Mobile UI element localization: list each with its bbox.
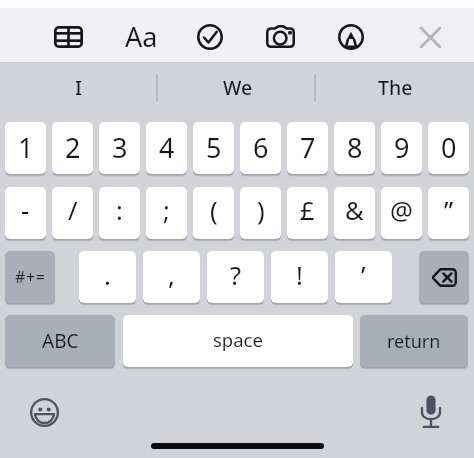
staticText: (	[210, 193, 218, 228]
staticText: ’	[361, 258, 366, 293]
staticText: ?	[230, 258, 242, 293]
staticText: ABC	[42, 328, 79, 354]
button[interactable]: 2	[52, 122, 93, 177]
staticText: @	[390, 193, 413, 228]
button[interactable]: Table	[45, 16, 91, 58]
button[interactable]: 1	[5, 122, 46, 177]
button[interactable]: :	[99, 187, 140, 242]
staticText: Aa	[125, 18, 158, 55]
button[interactable]: Camera	[257, 15, 303, 57]
staticText: -	[21, 193, 30, 228]
button[interactable]: space	[123, 315, 353, 370]
staticText: .	[104, 258, 111, 293]
staticText: £	[300, 193, 315, 228]
button[interactable]: Dictation	[411, 392, 451, 432]
button[interactable]: ABC	[5, 315, 115, 370]
button[interactable]: return	[360, 315, 468, 370]
staticText: 1	[18, 129, 34, 166]
button[interactable]: 5	[193, 122, 234, 177]
button[interactable]: )	[240, 187, 281, 242]
staticText: &	[345, 193, 364, 228]
button[interactable]: 6	[240, 122, 281, 177]
staticText: 9	[394, 129, 410, 166]
button[interactable]: ,	[143, 251, 200, 306]
button[interactable]: 4	[146, 122, 187, 177]
staticText: !	[296, 258, 303, 293]
staticText: 6	[253, 129, 269, 166]
button[interactable]: ?	[207, 251, 264, 306]
staticText: The	[378, 74, 413, 101]
staticText: return	[387, 329, 441, 354]
staticText: :	[116, 193, 123, 228]
staticText: )	[257, 193, 265, 228]
staticText: 4	[159, 129, 175, 166]
staticText: #+=	[15, 266, 46, 288]
button[interactable]: 8	[334, 122, 375, 177]
button[interactable]: Close	[407, 16, 453, 58]
staticText: ,	[168, 258, 175, 293]
button[interactable]: ;	[146, 187, 187, 242]
button[interactable]: (	[193, 187, 234, 242]
button[interactable]: #+=	[5, 251, 55, 306]
staticText: 2	[65, 129, 81, 166]
button[interactable]: ”	[428, 187, 469, 242]
button[interactable]: £	[287, 187, 328, 242]
staticText: We	[223, 74, 253, 101]
button[interactable]: I	[0, 62, 157, 112]
button[interactable]: /	[52, 187, 93, 242]
staticText: /	[68, 193, 78, 228]
staticText: 3	[112, 129, 128, 166]
button[interactable]: .	[79, 251, 136, 306]
staticText: space	[213, 327, 263, 352]
button[interactable]: We	[159, 62, 316, 112]
staticText: ”	[444, 193, 454, 228]
staticText: 8	[347, 129, 363, 166]
button[interactable]: 3	[99, 122, 140, 177]
button[interactable]: @	[381, 187, 422, 242]
button[interactable]: 7	[287, 122, 328, 177]
button[interactable]: Markup	[328, 16, 374, 58]
button[interactable]: Mark as done	[187, 16, 233, 58]
button[interactable]: !	[271, 251, 328, 306]
button[interactable]: 0	[428, 122, 469, 177]
button[interactable]: The	[317, 62, 474, 112]
button[interactable]: Aa	[118, 15, 164, 57]
button[interactable]: Emoji	[24, 392, 64, 432]
button[interactable]: 9	[381, 122, 422, 177]
button[interactable]: Backspace	[419, 251, 469, 306]
button[interactable]: ’	[335, 251, 392, 306]
staticText: 7	[300, 129, 316, 166]
button[interactable]: -	[5, 187, 46, 242]
staticText: 0	[441, 129, 457, 166]
staticText: 5	[206, 129, 222, 166]
staticText: I	[75, 74, 82, 101]
staticText: ;	[163, 193, 170, 228]
button[interactable]: &	[334, 187, 375, 242]
